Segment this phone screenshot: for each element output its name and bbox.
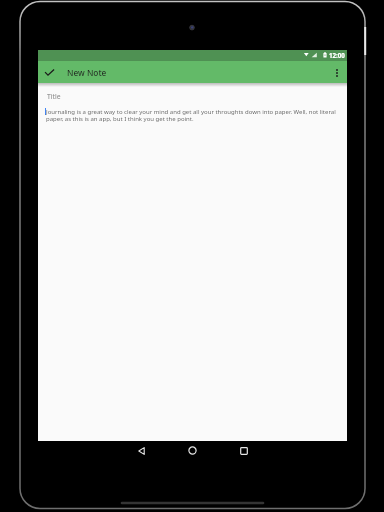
button[interactable] [235, 442, 252, 459]
button[interactable] [184, 442, 201, 459]
staticText: 12:00 [329, 51, 345, 59]
staticText: Journaling is a great way to clear your … [46, 108, 336, 123]
button[interactable] [133, 442, 150, 459]
button[interactable] [328, 63, 345, 83]
button[interactable] [40, 62, 58, 82]
button[interactable]: Title [38, 83, 347, 442]
staticText: Title [47, 92, 61, 101]
staticText: New Note [67, 67, 107, 78]
